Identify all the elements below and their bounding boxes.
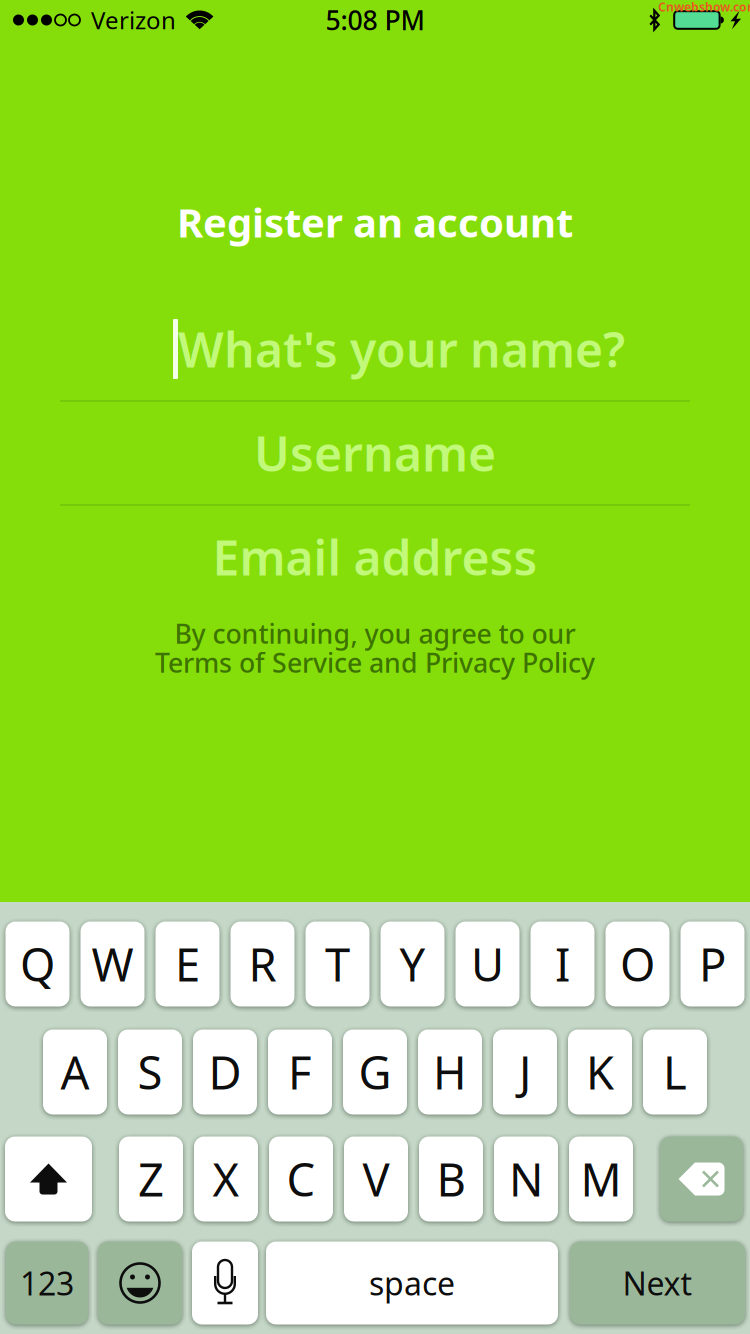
- button[interactable]: U: [455, 921, 519, 1006]
- staticText: Terms of Service and Privacy Policy: [155, 645, 595, 680]
- staticText: 123: [20, 1262, 74, 1304]
- staticText: Z: [138, 1149, 164, 1209]
- staticText: H: [433, 1042, 467, 1102]
- button[interactable]: 123: [6, 1241, 88, 1324]
- button[interactable]: I: [530, 921, 594, 1006]
- button[interactable]: L: [643, 1029, 707, 1114]
- button[interactable]: O: [605, 921, 669, 1006]
- staticText: Y: [399, 934, 425, 994]
- staticText: Email address: [212, 525, 537, 589]
- staticText: What's your name?: [178, 317, 625, 381]
- button[interactable]: W: [80, 921, 144, 1006]
- staticText: W: [91, 934, 133, 994]
- button[interactable]: A: [43, 1029, 107, 1114]
- staticText: X: [212, 1149, 239, 1209]
- staticText: D: [208, 1042, 241, 1102]
- staticText: space: [369, 1262, 455, 1304]
- staticText: A: [60, 1042, 89, 1102]
- button[interactable]: Emoji keyboard: [98, 1241, 182, 1324]
- button[interactable]: X: [194, 1136, 258, 1221]
- button[interactable]: C: [269, 1136, 333, 1221]
- staticText: S: [137, 1042, 162, 1102]
- staticText: E: [175, 934, 200, 994]
- staticText: N: [509, 1149, 543, 1209]
- staticText: Q: [20, 934, 55, 994]
- button[interactable]: What's your name?: [0, 298, 750, 400]
- staticText: C: [286, 1149, 315, 1209]
- button[interactable]: Y: [380, 921, 444, 1006]
- button[interactable]: R: [230, 921, 294, 1006]
- button[interactable]: Username: [0, 402, 750, 504]
- button[interactable]: Q: [5, 921, 69, 1006]
- staticText: V: [362, 1149, 389, 1209]
- button[interactable]: P: [680, 921, 744, 1006]
- staticText: U: [471, 934, 504, 994]
- staticText: B: [436, 1149, 465, 1209]
- button[interactable]: N: [494, 1136, 558, 1221]
- staticText: I: [555, 934, 570, 994]
- button[interactable]: Shift: [5, 1136, 92, 1221]
- staticText: By continuing, you agree to our: [174, 616, 575, 651]
- button[interactable]: V: [344, 1136, 408, 1221]
- staticText: 5:08 PM: [325, 2, 424, 38]
- staticText: O: [620, 934, 655, 994]
- staticText: M: [580, 1149, 621, 1209]
- button[interactable]: Delete: [660, 1136, 743, 1221]
- button[interactable]: F: [268, 1029, 332, 1114]
- staticText: Next: [622, 1262, 692, 1304]
- staticText: G: [358, 1042, 391, 1102]
- button[interactable]: B: [419, 1136, 483, 1221]
- staticText: T: [325, 934, 350, 994]
- button[interactable]: M: [569, 1136, 633, 1221]
- button[interactable]: E: [155, 921, 219, 1006]
- staticText: Verizon: [91, 4, 176, 36]
- staticText: P: [699, 934, 726, 994]
- button[interactable]: Email address: [0, 506, 750, 608]
- button[interactable]: Next: [570, 1241, 745, 1324]
- staticText: R: [248, 934, 276, 994]
- staticText: J: [519, 1042, 531, 1102]
- staticText: Cnwebshow.com: [658, 0, 750, 15]
- staticText: Username: [254, 421, 496, 485]
- button[interactable]: D: [193, 1029, 257, 1114]
- button[interactable]: K: [568, 1029, 632, 1114]
- button[interactable]: S: [118, 1029, 182, 1114]
- button[interactable]: J: [493, 1029, 557, 1114]
- button[interactable]: space: [266, 1241, 558, 1324]
- staticText: K: [586, 1042, 614, 1102]
- button[interactable]: T: [305, 921, 369, 1006]
- button[interactable]: Z: [119, 1136, 183, 1221]
- button[interactable]: G: [343, 1029, 407, 1114]
- staticText: Register an account: [177, 195, 573, 248]
- button[interactable]: Dictation: [192, 1241, 258, 1324]
- staticText: L: [663, 1042, 687, 1102]
- staticText: F: [288, 1042, 312, 1102]
- button[interactable]: H: [418, 1029, 482, 1114]
